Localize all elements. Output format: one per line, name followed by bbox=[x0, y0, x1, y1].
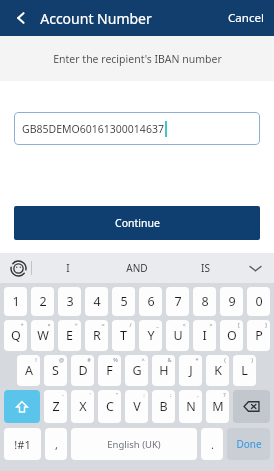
staticText: % bbox=[113, 356, 118, 363]
button[interactable]: 4 bbox=[85, 287, 108, 316]
button[interactable]: AND bbox=[102, 253, 171, 283]
button[interactable]: Expand suggestions bbox=[244, 257, 266, 279]
staticText: AND bbox=[126, 261, 148, 275]
staticText: J bbox=[189, 362, 193, 379]
button[interactable]: 3 bbox=[58, 287, 81, 316]
button[interactable]: 7 bbox=[166, 287, 189, 316]
staticText: F bbox=[106, 362, 113, 379]
button[interactable]: 6 bbox=[139, 287, 162, 316]
button[interactable]: D bbox=[71, 355, 94, 386]
staticText: ] bbox=[265, 321, 267, 328]
staticText: !#1 bbox=[14, 437, 31, 452]
button[interactable]: L bbox=[233, 355, 256, 386]
staticText: " bbox=[115, 391, 118, 398]
staticText: L bbox=[241, 362, 248, 379]
staticText: Q bbox=[11, 327, 21, 344]
staticText: Z bbox=[52, 398, 60, 415]
staticText: ) bbox=[251, 356, 253, 363]
button[interactable]: I bbox=[193, 320, 216, 351]
staticText: [ bbox=[238, 321, 240, 328]
staticText: Enter the recipient's IBAN number bbox=[53, 52, 222, 66]
button[interactable]: W bbox=[31, 320, 54, 351]
button[interactable]: , bbox=[45, 428, 67, 460]
button[interactable]: S bbox=[44, 355, 67, 386]
staticText: = bbox=[101, 321, 105, 328]
staticText: I bbox=[202, 327, 207, 344]
button[interactable]: T bbox=[112, 320, 135, 351]
staticText: K bbox=[214, 362, 222, 379]
staticText: # bbox=[87, 356, 91, 363]
button[interactable]: Cancel bbox=[218, 4, 274, 32]
button[interactable]: English (UK) bbox=[71, 428, 197, 460]
button[interactable]: !#1 bbox=[4, 428, 41, 460]
button[interactable]: GB85DEMO60161300014637 bbox=[14, 112, 260, 145]
button[interactable]: 5 bbox=[112, 287, 135, 316]
button[interactable]: C bbox=[98, 390, 121, 423]
staticText: - bbox=[62, 391, 64, 398]
staticText: Account Number bbox=[40, 9, 152, 28]
staticText: English (UK) bbox=[107, 438, 161, 451]
button[interactable]: O bbox=[220, 320, 243, 351]
staticText: Cancel bbox=[228, 10, 264, 26]
button[interactable]: A bbox=[17, 355, 40, 386]
button[interactable]: Continue bbox=[14, 206, 260, 240]
button[interactable]: H bbox=[152, 355, 175, 386]
staticText: T bbox=[120, 327, 127, 344]
button[interactable]: M bbox=[206, 390, 229, 423]
button[interactable]: 9 bbox=[220, 287, 243, 316]
staticText: 1 bbox=[12, 293, 20, 310]
button[interactable]: G bbox=[125, 355, 148, 386]
staticText: GB85DEMO60161300014637 bbox=[22, 122, 164, 136]
staticText: . bbox=[211, 437, 214, 452]
button[interactable]: Emoji bbox=[6, 256, 30, 280]
staticText: > bbox=[209, 321, 213, 328]
staticText: , bbox=[197, 391, 199, 398]
button[interactable]: K bbox=[206, 355, 229, 386]
staticText: < bbox=[182, 321, 186, 328]
staticText: IS bbox=[201, 261, 210, 275]
button[interactable]: 1 bbox=[4, 287, 27, 316]
button[interactable]: Back bbox=[8, 5, 34, 31]
button[interactable]: U bbox=[166, 320, 189, 351]
button[interactable]: 0 bbox=[247, 287, 270, 316]
staticText: ; bbox=[170, 391, 172, 398]
staticText: ( bbox=[224, 356, 226, 363]
button[interactable]: I bbox=[34, 253, 102, 283]
staticText: O bbox=[227, 327, 237, 344]
staticText: ? bbox=[223, 391, 226, 398]
button[interactable]: R bbox=[85, 320, 108, 351]
button[interactable]: V bbox=[125, 390, 148, 423]
staticText: Y bbox=[147, 327, 155, 344]
button[interactable]: E bbox=[58, 320, 81, 351]
staticText: G bbox=[132, 362, 142, 379]
button[interactable]: 2 bbox=[31, 287, 54, 316]
button[interactable]: N bbox=[179, 390, 202, 423]
staticText: 5 bbox=[120, 293, 128, 310]
button[interactable]: Done bbox=[227, 428, 270, 460]
staticText: : bbox=[143, 391, 145, 398]
button[interactable]: IS bbox=[171, 253, 240, 283]
staticText: A bbox=[25, 362, 33, 379]
staticText: S bbox=[52, 362, 59, 379]
button[interactable]: P bbox=[247, 320, 270, 351]
button[interactable]: X bbox=[71, 390, 94, 423]
staticText: W bbox=[37, 327, 49, 344]
staticText: ÷ bbox=[74, 321, 78, 328]
staticText: _ bbox=[156, 321, 159, 328]
staticText: H bbox=[159, 362, 169, 379]
button[interactable]: Backspace bbox=[233, 390, 270, 423]
button[interactable]: F bbox=[98, 355, 121, 386]
staticText: V bbox=[133, 398, 141, 415]
staticText: X bbox=[79, 398, 87, 415]
button[interactable]: Q bbox=[4, 320, 27, 351]
button[interactable]: B bbox=[152, 390, 175, 423]
staticText: 7 bbox=[174, 293, 182, 310]
button[interactable]: . bbox=[201, 428, 223, 460]
button[interactable]: J bbox=[179, 355, 202, 386]
button[interactable]: 8 bbox=[193, 287, 216, 316]
staticText: / bbox=[129, 321, 132, 328]
staticText: ' bbox=[89, 391, 91, 398]
button[interactable]: Y bbox=[139, 320, 162, 351]
button[interactable]: Shift bbox=[4, 390, 40, 423]
button[interactable]: Z bbox=[44, 390, 67, 423]
